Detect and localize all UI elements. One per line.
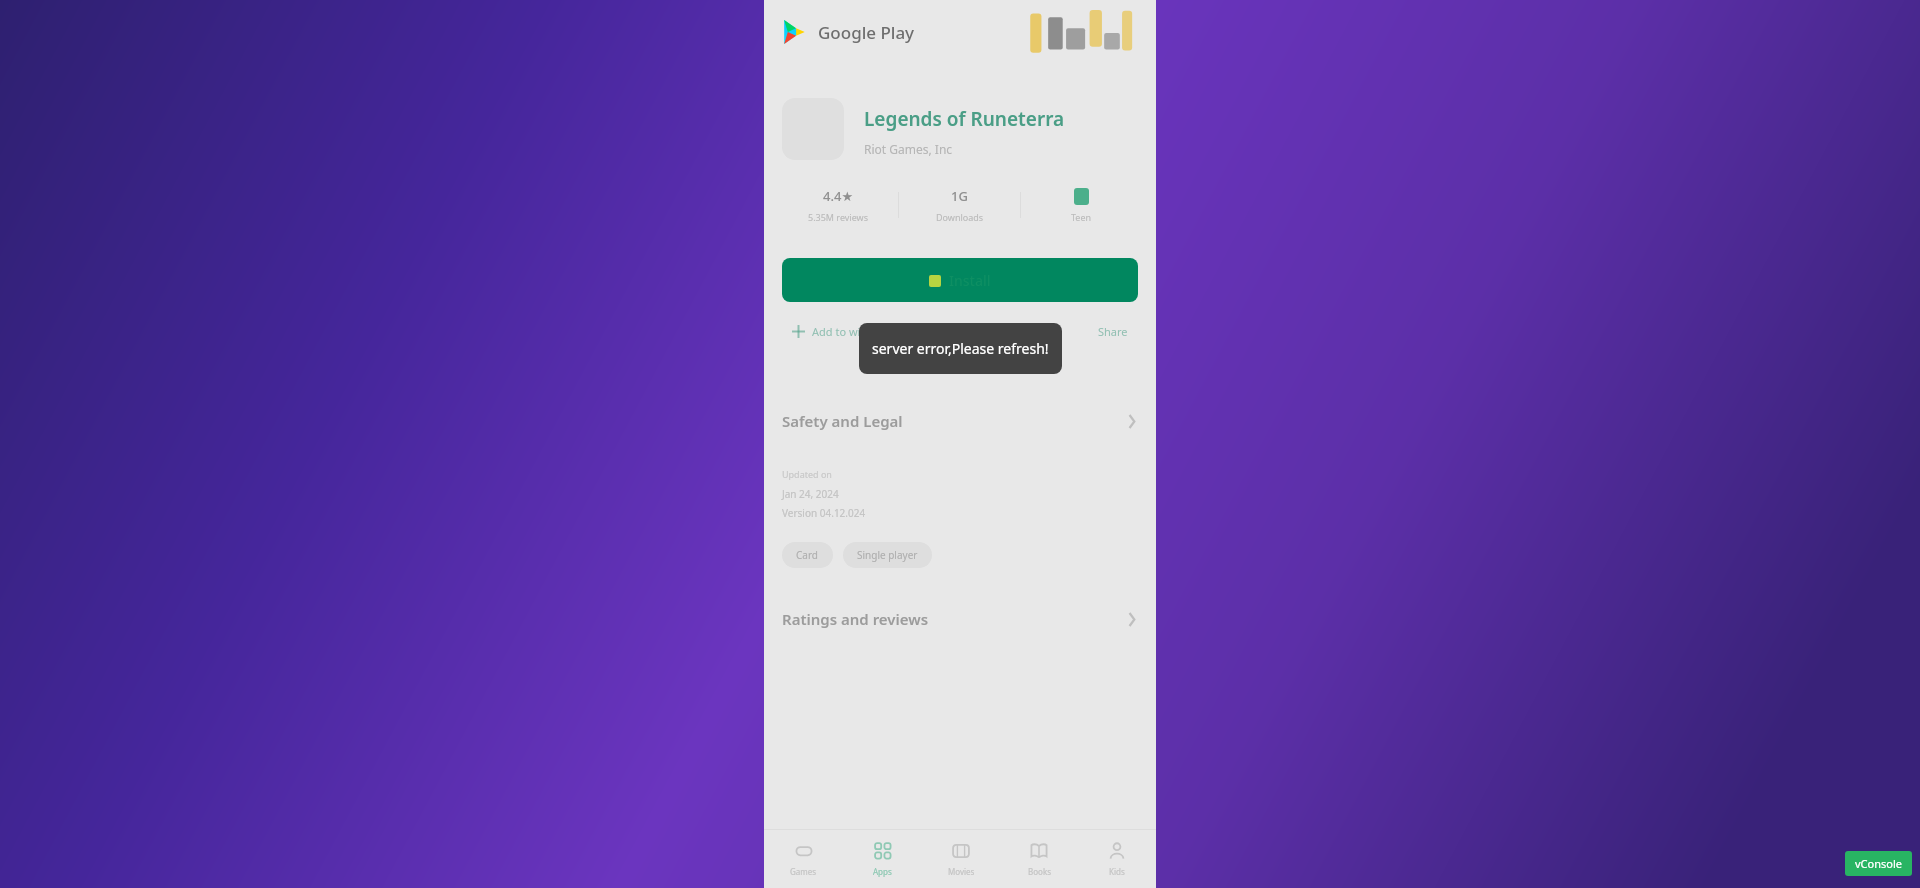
button[interactable]: Safety and Legal [764, 404, 1156, 438]
button[interactable]: Teen [1021, 184, 1142, 227]
staticText: Downloads [936, 211, 984, 223]
staticText: Single player [857, 548, 918, 562]
button[interactable]: Single player [843, 542, 932, 568]
staticText: 5.35M reviews [808, 211, 868, 223]
other: More [1125, 415, 1138, 428]
button[interactable]: vConsole [1845, 851, 1912, 876]
button[interactable]: 4.4★ [778, 183, 898, 227]
staticText: Add to wishlist [812, 324, 888, 338]
button[interactable]: Ratings and reviews [764, 602, 1156, 636]
staticText: Riot Games, Inc [864, 141, 953, 157]
staticText: vConsole [1855, 856, 1902, 871]
button[interactable]: Google Play [780, 19, 806, 45]
button[interactable]: Share [1094, 320, 1132, 342]
button[interactable]: Install [782, 258, 1138, 302]
button[interactable]: Apps [843, 830, 922, 888]
staticText: Movies [948, 866, 975, 877]
staticText: 1G [951, 187, 968, 205]
button[interactable]: Kids [1078, 830, 1156, 888]
staticText: Ratings and reviews [782, 609, 929, 629]
staticText: Games [790, 866, 817, 877]
button[interactable]: Card [782, 542, 833, 568]
staticText: Jan 24, 2024 [782, 487, 839, 501]
staticText: Google Play [818, 21, 915, 44]
button[interactable]: 1G [899, 183, 1020, 227]
button[interactable]: Games [764, 830, 843, 888]
staticText: Teen [1071, 211, 1092, 223]
staticText: Safety and Legal [782, 411, 903, 431]
staticText: 4.4★ [823, 187, 854, 205]
staticText: Updated on [782, 468, 832, 480]
button[interactable]: Promotion banner [1028, 9, 1140, 55]
button[interactable]: Books [1000, 830, 1078, 888]
staticText: Kids [1109, 866, 1125, 877]
staticText: Books [1028, 866, 1051, 877]
staticText: Install [949, 271, 991, 290]
button[interactable]: Add to wishlist [788, 320, 892, 342]
staticText: Apps [873, 866, 892, 877]
other: More [1125, 613, 1138, 626]
staticText: server error,Please refresh! [872, 339, 1049, 358]
button[interactable]: Movies [922, 830, 1000, 888]
staticText: Share [1098, 324, 1128, 338]
staticText: Legends of Runeterra [864, 106, 1065, 132]
staticText: Card [796, 548, 819, 562]
staticText: Version 04.12.024 [782, 506, 866, 520]
